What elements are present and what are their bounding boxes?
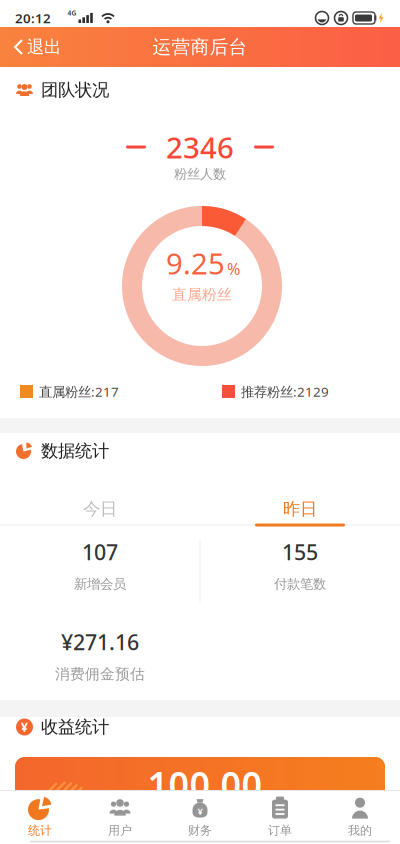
staticText: 退出: [27, 36, 61, 58]
staticText: 付款笔数: [274, 576, 326, 592]
staticText: 9.25: [166, 243, 225, 282]
staticText: ¥: [21, 719, 28, 735]
button[interactable]: 统计: [0, 790, 80, 844]
button[interactable]: 用户: [80, 790, 160, 844]
staticText: 新增会员: [74, 576, 126, 592]
staticText: ¥271.16: [61, 628, 139, 656]
staticText: 107: [82, 538, 118, 566]
staticText: 数据统计: [41, 440, 109, 462]
button[interactable]: 退出: [0, 27, 61, 67]
button[interactable]: 我的: [320, 790, 400, 844]
staticText: 4G: [67, 9, 76, 17]
button[interactable]: ¥: [160, 790, 240, 844]
staticText: 粉丝人数: [174, 166, 226, 182]
staticText: 今日: [83, 498, 117, 520]
staticText: 运营商后台: [152, 35, 247, 58]
staticText: 100.00: [147, 760, 262, 808]
staticText: ¥: [197, 805, 202, 817]
button[interactable]: 订单: [240, 790, 320, 844]
staticText: 消费佣金预估: [55, 665, 145, 683]
staticText: 统计: [28, 823, 52, 838]
staticText: 收益统计: [41, 716, 109, 738]
staticText: 我的: [348, 823, 372, 838]
staticText: 直属粉丝:217: [39, 383, 119, 400]
button[interactable]: 今日: [0, 491, 200, 527]
button[interactable]: 昨日: [200, 491, 400, 527]
staticText: 直属粉丝: [172, 285, 232, 303]
staticText: %: [227, 258, 240, 279]
staticText: 财务: [188, 823, 212, 838]
staticText: 团队状况: [41, 79, 109, 101]
staticText: 155: [282, 538, 318, 566]
staticText: 20:12: [15, 9, 51, 27]
staticText: 推荐粉丝:2129: [241, 383, 329, 400]
staticText: 昨日: [283, 498, 317, 520]
staticText: 2346: [166, 127, 234, 166]
staticText: 用户: [108, 823, 132, 838]
staticText: 订单: [268, 823, 292, 838]
